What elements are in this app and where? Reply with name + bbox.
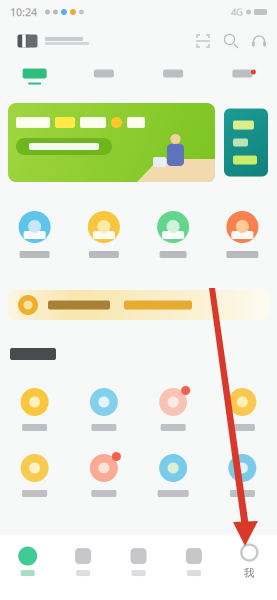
button[interactable]: [138, 454, 208, 497]
button[interactable]: Customer service: [251, 33, 267, 49]
button[interactable]: Wealth: [55, 546, 111, 576]
button[interactable]: [69, 454, 138, 497]
button[interactable]: [0, 211, 69, 258]
button[interactable]: [0, 58, 69, 95]
button[interactable]: [8, 290, 269, 320]
button[interactable]: [0, 388, 69, 431]
button[interactable]: [69, 388, 138, 431]
button[interactable]: [8, 103, 215, 182]
button[interactable]: Bank of China: [10, 34, 89, 48]
button[interactable]: [69, 58, 138, 95]
staticText: 我: [244, 566, 255, 580]
button[interactable]: Home: [0, 546, 55, 576]
button[interactable]: [0, 454, 69, 497]
button[interactable]: [138, 211, 208, 258]
button[interactable]: Next banner: [224, 108, 268, 176]
button[interactable]: [138, 58, 208, 95]
button[interactable]: [208, 211, 277, 258]
staticText: 4G: [231, 6, 243, 18]
button[interactable]: [208, 454, 277, 497]
button[interactable]: Messages: [166, 546, 222, 576]
button[interactable]: Scan: [195, 33, 211, 49]
button[interactable]: [69, 211, 138, 258]
staticText: 10:24: [10, 5, 37, 19]
button[interactable]: Me: [222, 542, 277, 580]
button[interactable]: Life: [111, 546, 166, 576]
button[interactable]: Search: [223, 33, 239, 49]
button[interactable]: [138, 388, 208, 431]
button[interactable]: [208, 58, 277, 95]
button[interactable]: [208, 388, 277, 431]
